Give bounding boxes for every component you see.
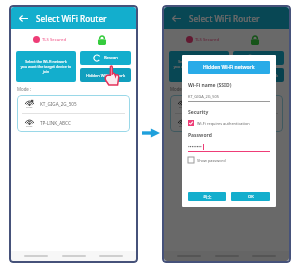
staticText: locked	[179, 125, 186, 128]
button[interactable]: Rescan	[80, 51, 131, 65]
staticText: Hidden Wi-Fi network	[203, 64, 255, 71]
staticText: Select WiFi Router	[36, 13, 107, 24]
staticText: KT_GIGA_2G_505	[193, 101, 230, 107]
staticText: Security	[188, 109, 209, 116]
button[interactable]: locked	[170, 114, 283, 132]
button[interactable]: 취소	[188, 192, 226, 201]
button[interactable]: Hidden WiFi network	[233, 68, 284, 82]
staticText: locked	[26, 106, 33, 109]
button[interactable]: Back	[17, 12, 29, 24]
button[interactable]: locked	[170, 95, 283, 113]
staticText: TLS Secured	[195, 37, 220, 43]
staticText: 취소	[203, 194, 212, 199]
staticText: Rescan	[104, 55, 118, 61]
staticText: Password	[188, 132, 212, 139]
staticText: Hidden WiFi network	[239, 73, 279, 78]
staticText: KT_GIGA_2G_505	[188, 94, 219, 99]
staticText: OK	[248, 194, 254, 200]
staticText: locked	[26, 125, 33, 128]
staticText: Select WiFi Router	[189, 13, 260, 24]
staticText: KT_GIGA_2G_505	[40, 101, 77, 107]
staticText: Wi-Fi name (SSID)	[188, 82, 232, 89]
staticText: TP-LINK_ABCC	[193, 120, 224, 126]
staticText: Mode :	[170, 86, 185, 92]
staticText: TP-LINK_ABCC	[40, 120, 71, 126]
staticText: ••••••••	[188, 144, 202, 150]
button[interactable]: locked	[17, 114, 130, 132]
staticText: locked	[179, 106, 186, 109]
button[interactable]: OK	[231, 192, 270, 201]
staticText: Show password	[197, 158, 226, 163]
button[interactable]: Show password	[188, 157, 226, 163]
button[interactable]: Hidden WiFi network	[80, 68, 131, 82]
button[interactable]: Select the Wi-Fi network you want the ta…	[169, 51, 229, 82]
button[interactable]: locked	[17, 95, 130, 113]
staticText: Hidden WiFi network	[86, 73, 126, 78]
button[interactable]: Back	[170, 12, 182, 24]
staticText: Select the Wi-Fi network you want the ta…	[172, 59, 226, 74]
button[interactable]: Select the Wi-Fi network you want the ta…	[16, 51, 76, 82]
staticText: TLS Secured	[42, 37, 67, 43]
staticText: Wi-Fi requires authentication	[197, 121, 250, 126]
button[interactable]: Rescan	[233, 51, 284, 65]
staticText: Mode :	[17, 86, 32, 92]
staticText: Select the Wi-Fi network you want the ta…	[19, 59, 73, 74]
button[interactable]: Wi-Fi requires authentication	[188, 120, 250, 126]
